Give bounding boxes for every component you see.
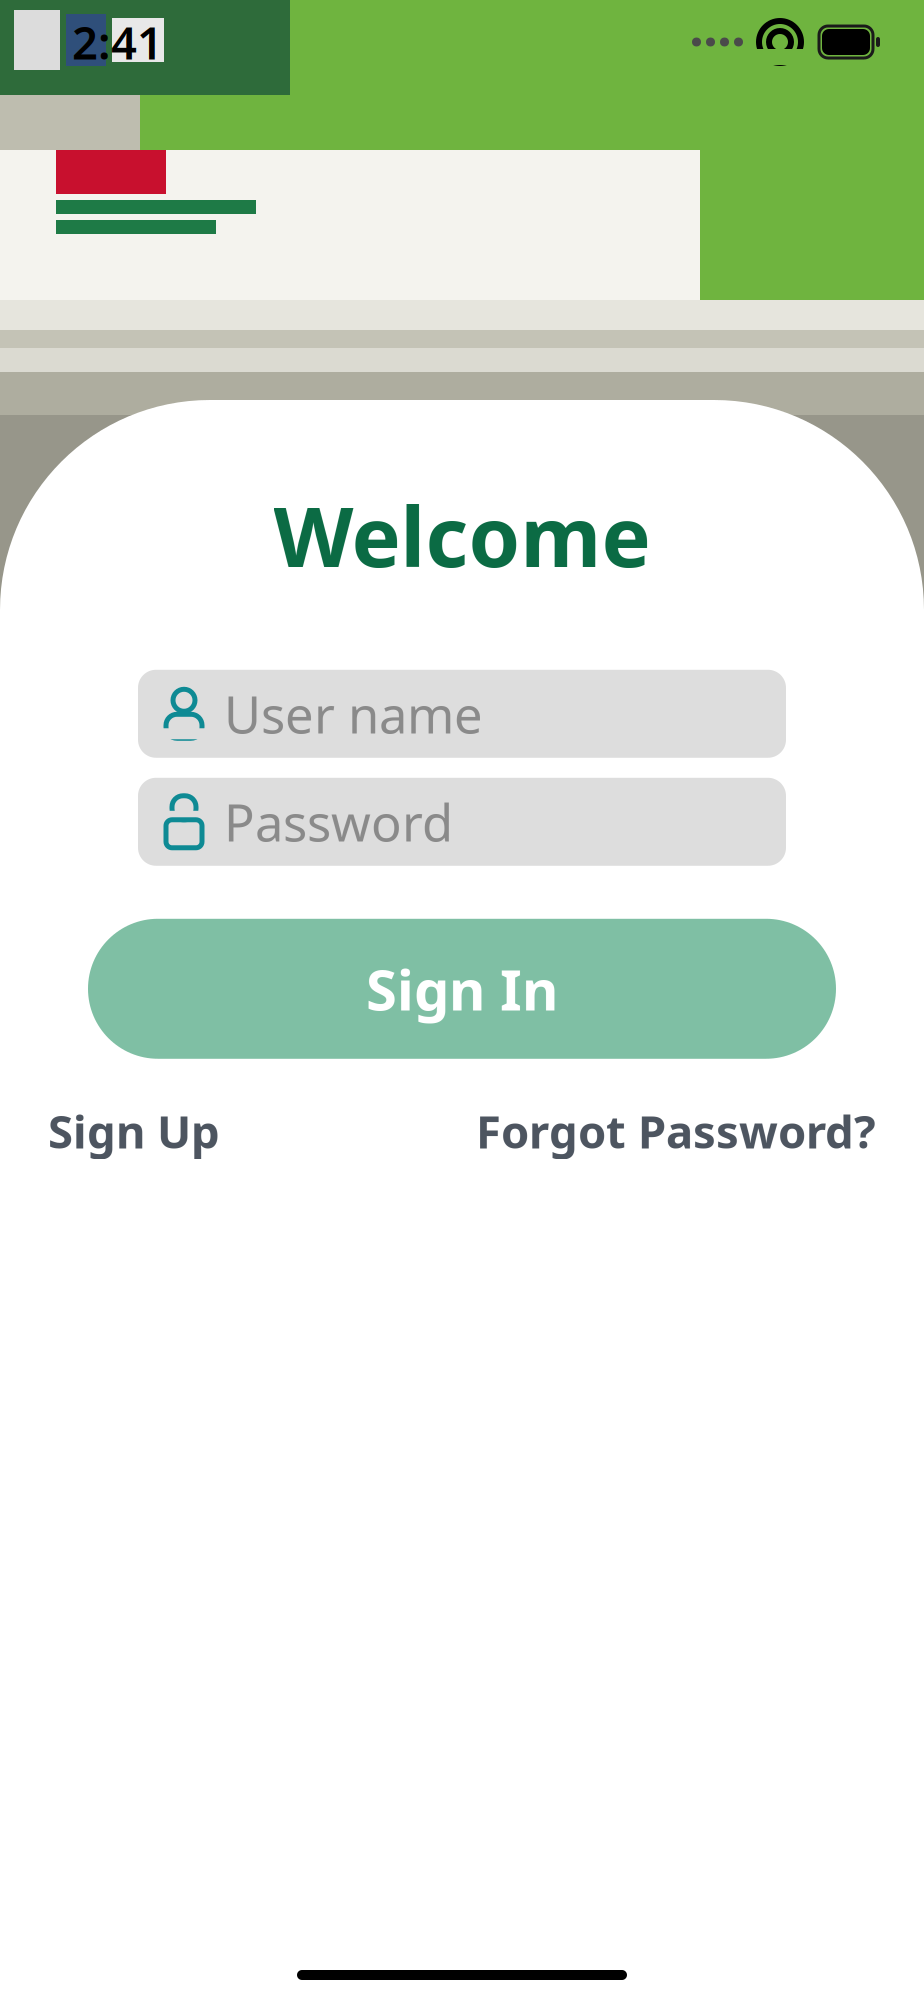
button[interactable]: Sign In	[88, 919, 836, 1059]
staticText: Sign In	[366, 952, 558, 1026]
staticText: Sign Up	[48, 1101, 220, 1161]
staticText: User name	[224, 680, 483, 747]
staticText: 2:41	[72, 12, 163, 72]
staticText: Forgot Password?	[476, 1101, 876, 1161]
button[interactable]: Forgot Password?	[476, 1101, 876, 1161]
staticText: Welcome	[273, 480, 650, 590]
button[interactable]: Sign Up	[48, 1101, 220, 1161]
staticText: Password	[224, 788, 453, 855]
